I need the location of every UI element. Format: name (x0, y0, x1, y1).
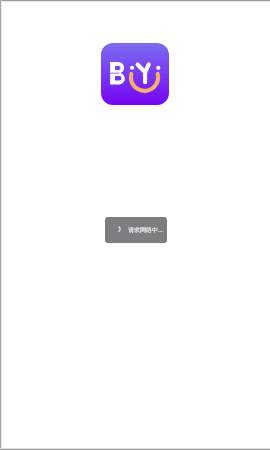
staticText: 请求网络中... (128, 226, 163, 234)
button[interactable]: 请求网络中... (105, 217, 167, 243)
button[interactable]: App logo (101, 43, 169, 105)
